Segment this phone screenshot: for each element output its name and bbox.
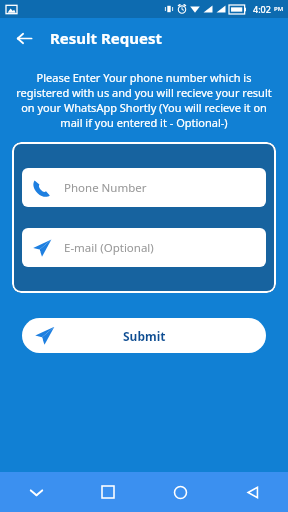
button[interactable]: Back bbox=[8, 22, 40, 54]
button[interactable]: Home bbox=[160, 472, 200, 512]
button[interactable]: Submit bbox=[22, 318, 266, 353]
staticText: E-mail (Optional) bbox=[64, 240, 154, 256]
staticText: 4:02 bbox=[253, 3, 271, 15]
button[interactable]: Phone Number bbox=[22, 168, 266, 207]
staticText: Result Request bbox=[50, 28, 162, 48]
button[interactable]: Recent apps bbox=[88, 472, 128, 512]
button[interactable]: Back bbox=[232, 472, 272, 512]
button[interactable]: Hide keyboard bbox=[16, 472, 56, 512]
staticText: PM bbox=[274, 5, 284, 13]
staticText: Submit bbox=[123, 328, 166, 344]
staticText: Phone Number bbox=[64, 180, 147, 196]
button[interactable]: E-mail (Optional) bbox=[22, 228, 266, 267]
staticText: Please Enter Your phone number which is … bbox=[12, 70, 276, 130]
